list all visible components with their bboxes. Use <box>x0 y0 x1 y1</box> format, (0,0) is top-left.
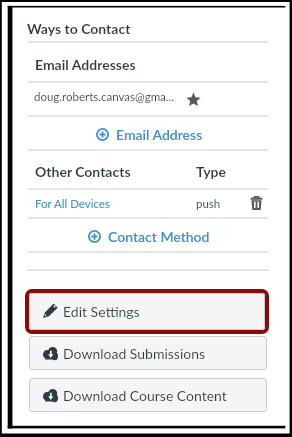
button[interactable]: Download Submissions <box>29 336 267 370</box>
button[interactable]: Edit Settings <box>29 293 265 330</box>
button[interactable]: Contact Method <box>88 224 210 248</box>
staticText: Edit Settings <box>63 303 140 320</box>
staticText: push <box>196 197 221 211</box>
staticText: Type <box>196 163 227 180</box>
staticText: Contact Method <box>108 228 210 245</box>
button[interactable]: Email Address <box>96 122 203 146</box>
staticText: Download Submissions <box>63 345 206 362</box>
staticText: doug.roberts.canvas@gma... <box>34 90 174 104</box>
staticText: For All Devices <box>35 197 110 211</box>
staticText: Email Address <box>116 126 203 143</box>
staticText: Other Contacts <box>35 163 131 180</box>
other: Default email address <box>186 92 201 107</box>
staticText: Ways to Contact <box>27 20 131 37</box>
staticText: Email Addresses <box>35 56 136 73</box>
button[interactable]: Download Course Content <box>29 378 267 412</box>
button[interactable]: Delete contact method <box>250 196 263 210</box>
staticText: Download Course Content <box>63 387 227 404</box>
